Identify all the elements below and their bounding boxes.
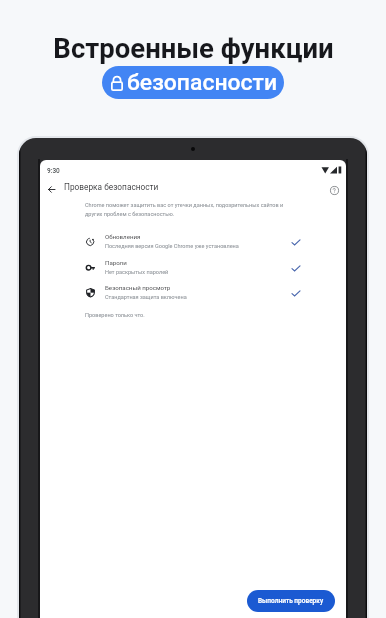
staticText: Безопасный просмотр [105, 284, 171, 291]
staticText: 9:30 [47, 167, 60, 175]
staticText: Проверено только что. [85, 312, 145, 319]
staticText: Встроенные функции [53, 32, 334, 64]
button[interactable]: Справка [324, 180, 344, 200]
button[interactable]: Назад [41, 179, 61, 199]
button[interactable]: Пароли [40, 255, 346, 279]
staticText: Последняя версия Google Chrome уже устан… [105, 243, 239, 250]
button[interactable]: Безопасный просмотр [40, 280, 346, 304]
staticText: Chrome поможет защитить вас от утечки да… [85, 202, 284, 217]
staticText: Стандартная защита включена [105, 294, 187, 301]
button[interactable]: Обновления [40, 229, 346, 253]
staticText: Обновления [105, 233, 141, 240]
button[interactable]: Выполнить проверку [247, 590, 335, 612]
staticText: безопасности [127, 69, 278, 96]
staticText: Проверка безопасности [64, 182, 159, 192]
staticText: Пароли [105, 259, 127, 266]
staticText: Выполнить проверку [258, 597, 324, 605]
button[interactable]: безопасности [102, 66, 284, 99]
staticText: Нет раскрытых паролей [105, 269, 169, 276]
